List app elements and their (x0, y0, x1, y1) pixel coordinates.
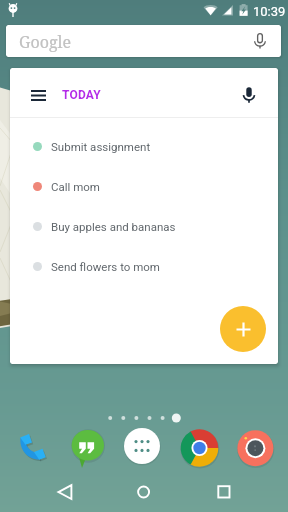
button[interactable]: Send flowers to mom (10, 246, 278, 286)
button[interactable]: Phone (12, 428, 52, 468)
button[interactable]: Add task (220, 306, 266, 352)
button[interactable]: Camera (235, 430, 275, 470)
staticText: Call mom (51, 180, 100, 193)
button[interactable]: Back (35, 476, 95, 508)
staticText: TODAY (62, 88, 101, 102)
staticText: Submit assignment (51, 140, 151, 153)
button[interactable]: Chrome (180, 429, 220, 469)
button[interactable]: Apps (124, 428, 164, 468)
button[interactable]: Voice input (231, 77, 267, 113)
button[interactable]: Recent apps (194, 476, 254, 508)
button[interactable]: Voice search (244, 25, 276, 57)
button[interactable]: Call mom (10, 166, 278, 206)
button[interactable]: Buy apples and bananas (10, 206, 278, 246)
button[interactable]: Google (6, 25, 281, 57)
staticText: Send flowers to mom (51, 260, 160, 273)
button[interactable]: Hangouts (68, 426, 108, 466)
button[interactable]: Menu (20, 77, 56, 113)
button[interactable]: TODAY (54, 77, 124, 113)
staticText: 10:39 (253, 4, 286, 19)
button[interactable]: Submit assignment (10, 126, 278, 166)
staticText: Buy apples and bananas (51, 220, 176, 233)
staticText: Google (19, 31, 72, 53)
button[interactable]: Home (114, 476, 174, 508)
